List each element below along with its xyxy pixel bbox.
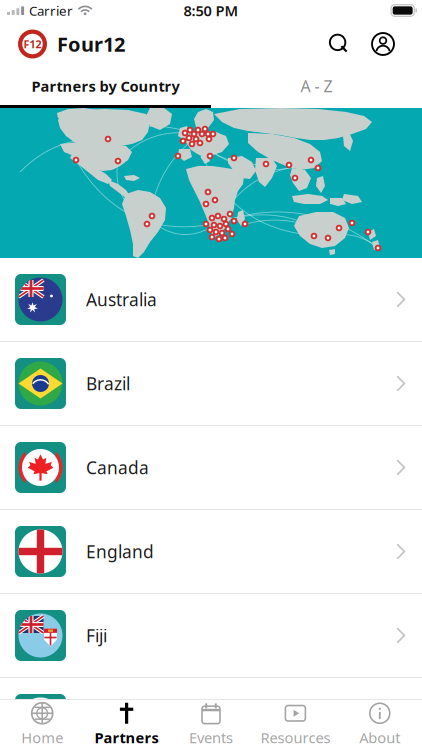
- button[interactable]: Brazil: [0, 342, 422, 426]
- staticText: Australia: [86, 288, 157, 311]
- staticText: Resources: [260, 728, 330, 747]
- staticText: Brazil: [86, 372, 130, 395]
- staticText: 8:50 PM: [183, 1, 238, 20]
- staticText: Canada: [86, 456, 149, 479]
- button[interactable]: Canada: [0, 426, 422, 510]
- staticText: Partners: [95, 728, 159, 747]
- button[interactable]: Account: [364, 25, 402, 63]
- staticText: Four12: [57, 31, 125, 57]
- button[interactable]: Partners by Country: [0, 67, 211, 105]
- staticText: Events: [189, 728, 233, 747]
- button[interactable]: Resources: [253, 700, 338, 750]
- staticText: Home: [21, 728, 63, 747]
- button[interactable]: India: [0, 678, 422, 750]
- button[interactable]: Partners: [84, 700, 169, 750]
- staticText: A - Z: [300, 75, 332, 97]
- button[interactable]: Events: [169, 700, 253, 750]
- button[interactable]: Fiji: [0, 594, 422, 678]
- staticText: England: [86, 540, 154, 563]
- staticText: About: [359, 728, 400, 747]
- button[interactable]: About: [338, 700, 422, 750]
- staticText: Carrier: [29, 2, 73, 19]
- staticText: F12: [23, 37, 41, 51]
- staticText: Fiji: [86, 624, 107, 647]
- button[interactable]: Home: [0, 700, 84, 750]
- staticText: India: [86, 708, 128, 731]
- button[interactable]: England: [0, 510, 422, 594]
- button[interactable]: A - Z: [211, 67, 422, 105]
- button[interactable]: Search: [320, 25, 364, 63]
- staticText: Partners by Country: [31, 76, 179, 96]
- button[interactable]: Australia: [0, 258, 422, 342]
